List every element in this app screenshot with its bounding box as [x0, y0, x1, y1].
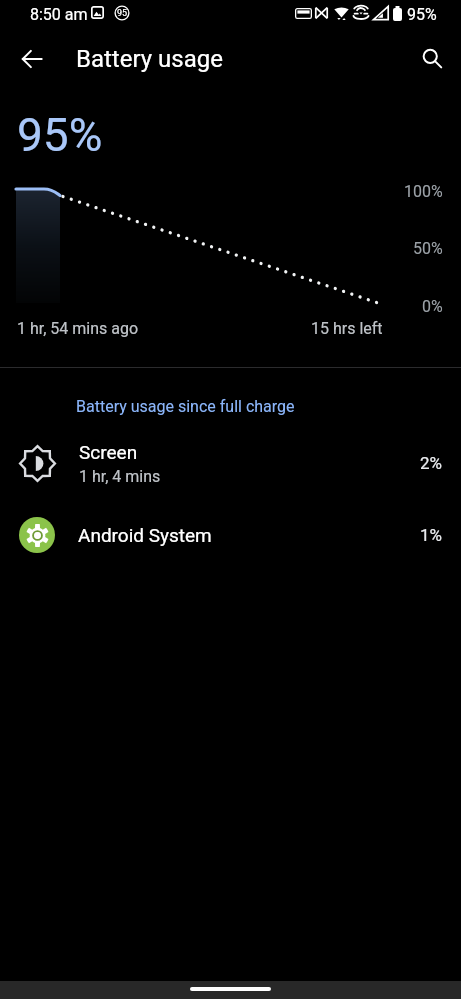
- staticText: Android System: [78, 524, 212, 546]
- staticText: 2%: [420, 453, 443, 473]
- button[interactable]: Screen: [0, 432, 461, 494]
- button[interactable]: Android System: [0, 508, 461, 562]
- staticText: 95%: [407, 5, 437, 24]
- staticText: 8:50 am: [30, 5, 88, 24]
- button[interactable]: Back: [12, 39, 52, 79]
- button[interactable]: Search: [412, 39, 452, 79]
- staticText: 1 hr, 54 mins ago: [17, 319, 139, 338]
- staticText: 15 hrs left: [311, 319, 383, 338]
- staticText: 95: [117, 8, 128, 19]
- staticText: 100%: [404, 182, 443, 201]
- staticText: 50%: [413, 239, 443, 258]
- staticText: Battery usage: [76, 45, 223, 73]
- staticText: 1 hr, 4 mins: [79, 467, 161, 486]
- staticText: Battery usage since full charge: [76, 397, 295, 416]
- staticText: 1%: [420, 525, 443, 545]
- staticText: Screen: [79, 441, 138, 463]
- button[interactable]: Battery usage since full charge: [70, 392, 301, 421]
- staticText: 0%: [422, 297, 443, 316]
- staticText: 95%: [17, 108, 103, 162]
